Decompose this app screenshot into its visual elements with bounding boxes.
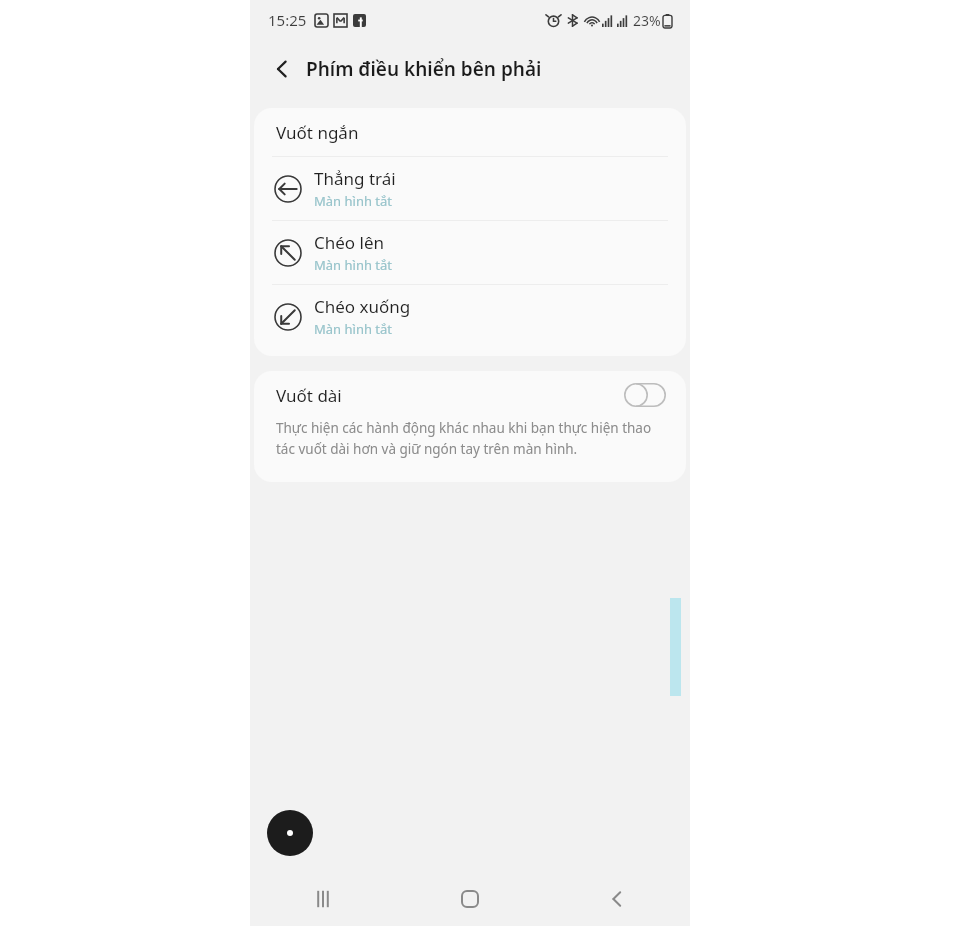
staticText: 15:25 xyxy=(268,10,307,30)
staticText: Chéo lên xyxy=(314,231,385,254)
button[interactable]: Assistant menu xyxy=(267,810,313,856)
button[interactable]: Back xyxy=(262,49,302,89)
staticText: Vuốt dài xyxy=(276,384,342,407)
staticText: Vuốt ngắn xyxy=(276,121,359,144)
staticText: Màn hình tắt xyxy=(314,320,393,338)
button[interactable]: Chéo xuống xyxy=(254,285,686,348)
button[interactable]: Back xyxy=(543,872,690,926)
staticText: Thực hiện các hành động khác nhau khi bạ… xyxy=(276,419,662,458)
staticText: Màn hình tắt xyxy=(314,256,393,274)
staticText: Thẳng trái xyxy=(314,167,396,190)
button[interactable]: Vuốt dài toggle xyxy=(624,383,666,407)
button[interactable]: Recents xyxy=(250,872,396,926)
staticText: Chéo xuống xyxy=(314,295,411,318)
staticText: Phím điều khiển bên phải xyxy=(306,56,542,82)
button[interactable]: Chéo lên xyxy=(254,221,686,284)
button[interactable]: Home xyxy=(396,872,543,926)
staticText: Màn hình tắt xyxy=(314,192,393,210)
staticText: 23% xyxy=(633,11,661,30)
button[interactable]: Thẳng trái xyxy=(254,157,686,220)
